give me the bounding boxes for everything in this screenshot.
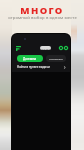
staticText: огромный выбор в одном месте [8, 15, 77, 21]
button[interactable]: Cart [64, 46, 68, 50]
staticText: Самовывоз [49, 57, 63, 60]
staticText: Найти в пункте выдачи [17, 65, 50, 69]
staticText: Москва [41, 47, 50, 50]
button[interactable]: Самовывоз [46, 55, 66, 62]
button[interactable]: Favourites [59, 46, 63, 50]
button[interactable]: Найти в пункте выдачи [17, 64, 66, 70]
button[interactable]: Logo [16, 46, 21, 51]
button[interactable]: Доставка [17, 55, 43, 62]
staticText: МНОГО [20, 4, 64, 15]
button[interactable]: Москва [40, 46, 51, 50]
staticText: Доставка [23, 57, 37, 61]
